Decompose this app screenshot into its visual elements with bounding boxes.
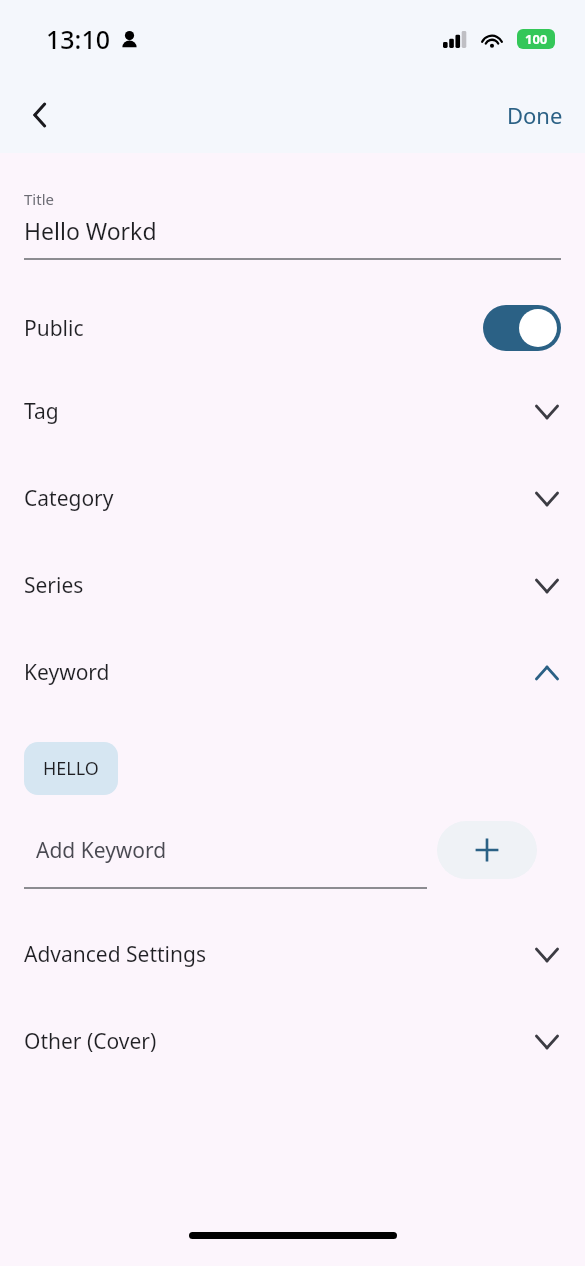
staticText: Tag — [24, 397, 59, 426]
staticText: Advanced Settings — [24, 940, 206, 969]
button[interactable]: Public — [0, 288, 585, 368]
staticText: 13:10 — [46, 22, 111, 56]
button[interactable]: Other (Cover) — [0, 998, 585, 1085]
button[interactable]: Add keyword — [437, 821, 537, 879]
staticText: Keyword — [24, 658, 110, 687]
button[interactable]: Back — [16, 91, 64, 139]
button[interactable]: Add Keyword — [36, 821, 427, 879]
button[interactable]: Keyword — [0, 629, 585, 716]
staticText: Done — [507, 100, 563, 130]
button[interactable]: HELLO — [24, 742, 118, 795]
staticText: Series — [24, 571, 84, 600]
staticText: 100 — [525, 30, 548, 48]
staticText: Add Keyword — [36, 836, 167, 865]
button[interactable]: Advanced Settings — [0, 911, 585, 998]
staticText: Category — [24, 484, 114, 513]
button[interactable]: Tag — [0, 368, 585, 455]
staticText: Title — [24, 189, 54, 209]
staticText: Hello Workd — [24, 215, 157, 246]
button[interactable]: Category — [0, 455, 585, 542]
button[interactable]: Public toggle — [483, 305, 561, 351]
staticText: Public — [24, 314, 84, 343]
button[interactable]: Series — [0, 542, 585, 629]
button[interactable]: Done — [485, 88, 585, 142]
staticText: HELLO — [43, 756, 99, 781]
staticText: Other (Cover) — [24, 1027, 157, 1056]
